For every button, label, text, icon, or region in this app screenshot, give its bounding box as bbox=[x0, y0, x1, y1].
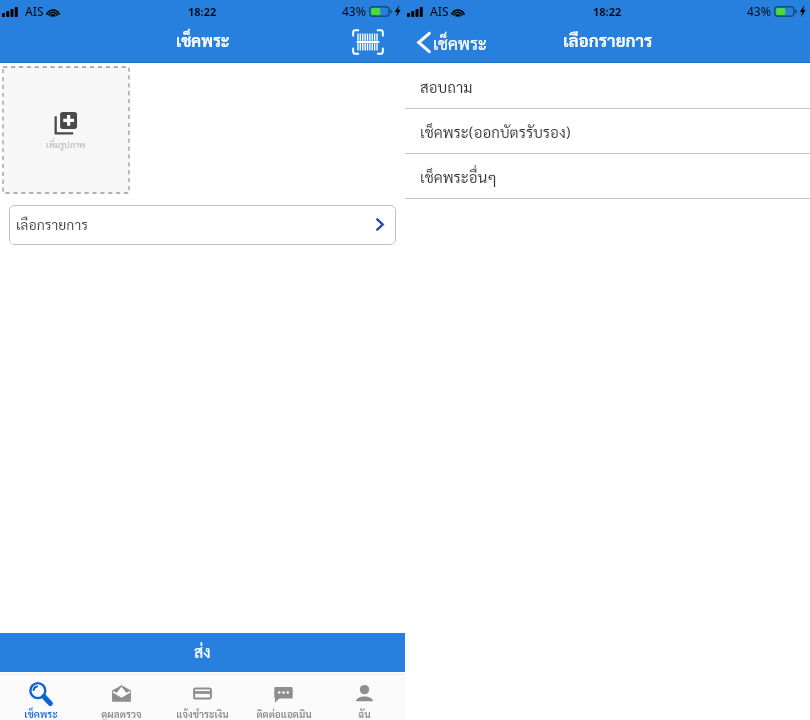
button[interactable]: ดูผลตรวจ bbox=[81, 675, 162, 720]
button[interactable]: เช็คพระ bbox=[0, 675, 81, 720]
staticText: ฉัน bbox=[358, 707, 371, 720]
staticText: 43% bbox=[747, 3, 771, 19]
button[interactable]: เลือกรายการ bbox=[9, 205, 396, 245]
staticText: เช็คพระ bbox=[433, 32, 487, 53]
button[interactable]: ติดต่อแอดมิน bbox=[243, 675, 324, 720]
staticText: 43% bbox=[342, 3, 366, 19]
staticText: 18:22 bbox=[188, 4, 217, 19]
staticText: เช็คพระอื่นๆ bbox=[420, 167, 497, 186]
staticText: ส่ง bbox=[194, 641, 211, 662]
button[interactable]: แจ้งชำระเงิน bbox=[162, 675, 243, 720]
staticText: AIS bbox=[25, 3, 44, 19]
staticText: แจ้งชำระเงิน bbox=[176, 707, 229, 720]
button[interactable]: ส่ง bbox=[0, 633, 405, 672]
staticText: 18:22 bbox=[593, 4, 622, 19]
staticText: เลือกรายการ bbox=[16, 215, 88, 233]
button[interactable]: เช็คพระอื่นๆ bbox=[405, 154, 810, 199]
staticText: ดูผลตรวจ bbox=[101, 707, 142, 720]
staticText: ติดต่อแอดมิน bbox=[256, 707, 312, 720]
staticText: เช็คพระ(ออกบัตรรับรอง) bbox=[420, 122, 571, 141]
button[interactable]: เช็คพระ(ออกบัตรรับรอง) bbox=[405, 109, 810, 154]
staticText: เพิ่มรูปภาพ bbox=[46, 139, 86, 150]
staticText: เช็คพระ bbox=[176, 30, 230, 51]
button[interactable]: ฉัน bbox=[324, 675, 405, 720]
staticText: สอบถาม bbox=[420, 77, 473, 96]
staticText: AIS bbox=[430, 3, 449, 19]
staticText: เลือกรายการ bbox=[563, 29, 653, 51]
button[interactable]: Scan barcode bbox=[351, 25, 385, 59]
button[interactable]: สอบถาม bbox=[405, 64, 810, 109]
staticText: เช็คพระ bbox=[24, 707, 58, 720]
button[interactable]: Add photo bbox=[3, 67, 129, 193]
button[interactable]: เช็คพระ bbox=[405, 22, 493, 62]
